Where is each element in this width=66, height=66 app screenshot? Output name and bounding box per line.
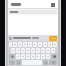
button[interactable] — [33, 42, 37, 47]
button[interactable]: More options — [50, 2, 56, 8]
button[interactable] — [11, 48, 15, 53]
button[interactable] — [23, 42, 27, 47]
button[interactable]: Send — [49, 36, 58, 41]
button[interactable]: Emoji — [16, 60, 21, 65]
button[interactable] — [21, 48, 25, 53]
button[interactable] — [48, 42, 52, 47]
button[interactable] — [41, 48, 45, 53]
button[interactable] — [46, 48, 50, 53]
button[interactable] — [36, 54, 40, 59]
button[interactable]: Backspace — [51, 54, 57, 59]
button[interactable] — [46, 54, 50, 59]
button[interactable] — [9, 10, 57, 14]
button[interactable]: Shift — [9, 54, 15, 59]
button[interactable]: Recipient field — [10, 2, 22, 7]
button[interactable] — [26, 54, 30, 59]
button[interactable] — [28, 42, 32, 47]
button[interactable] — [31, 54, 35, 59]
button[interactable]: Enter — [49, 60, 57, 65]
button[interactable]: Period — [43, 60, 48, 65]
button[interactable] — [51, 48, 55, 53]
button[interactable] — [36, 48, 40, 53]
button[interactable] — [16, 48, 20, 53]
button[interactable] — [21, 54, 25, 59]
button[interactable] — [16, 54, 20, 59]
button[interactable] — [38, 42, 42, 47]
button[interactable] — [13, 42, 17, 47]
button[interactable]: Symbols — [9, 60, 15, 65]
button[interactable] — [31, 48, 35, 53]
button[interactable] — [26, 48, 30, 53]
button[interactable] — [43, 42, 47, 47]
button[interactable] — [9, 42, 12, 47]
button[interactable] — [18, 42, 22, 47]
button[interactable] — [41, 54, 45, 59]
button[interactable] — [53, 42, 57, 47]
button[interactable] — [8, 35, 49, 41]
